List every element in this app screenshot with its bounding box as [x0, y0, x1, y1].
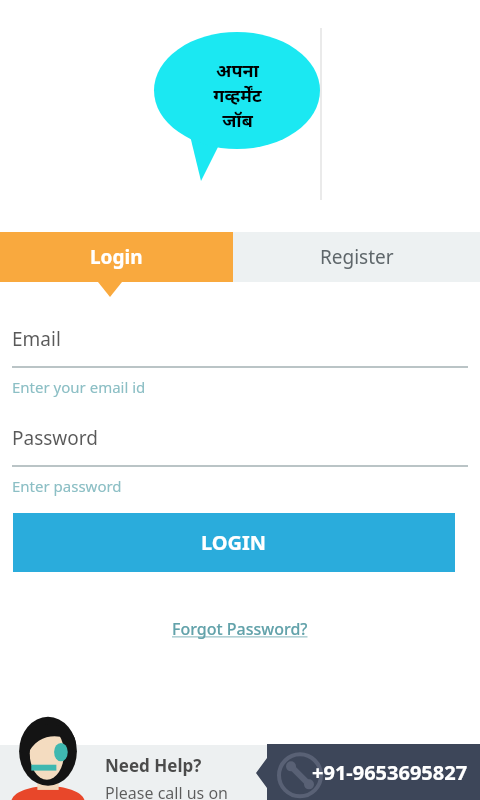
staticText: Need Help? — [105, 754, 202, 777]
button[interactable]: Call +91-9653695827 — [256, 744, 480, 800]
staticText: +91-9653695827 — [312, 759, 468, 786]
staticText: Password — [12, 425, 98, 451]
staticText: Enter your email id — [12, 377, 146, 397]
button[interactable]: Login — [0, 232, 233, 282]
button[interactable]: Forgot Password? — [166, 612, 314, 646]
staticText: Enter password — [12, 476, 122, 496]
staticText: Register — [320, 244, 394, 270]
staticText: Login — [90, 244, 143, 270]
staticText: अपना — [216, 58, 259, 83]
button[interactable]: LOGIN — [13, 513, 455, 572]
button[interactable]: Password — [12, 425, 468, 496]
staticText: LOGIN — [201, 529, 267, 556]
button[interactable]: Register — [233, 232, 480, 282]
staticText: Forgot Password? — [172, 618, 308, 640]
staticText: Please call us on — [105, 782, 229, 800]
staticText: जॉब — [222, 108, 253, 133]
button[interactable]: Email — [12, 326, 468, 397]
staticText: Email — [12, 326, 61, 352]
staticText: गव्हर्मेंट — [213, 83, 262, 108]
